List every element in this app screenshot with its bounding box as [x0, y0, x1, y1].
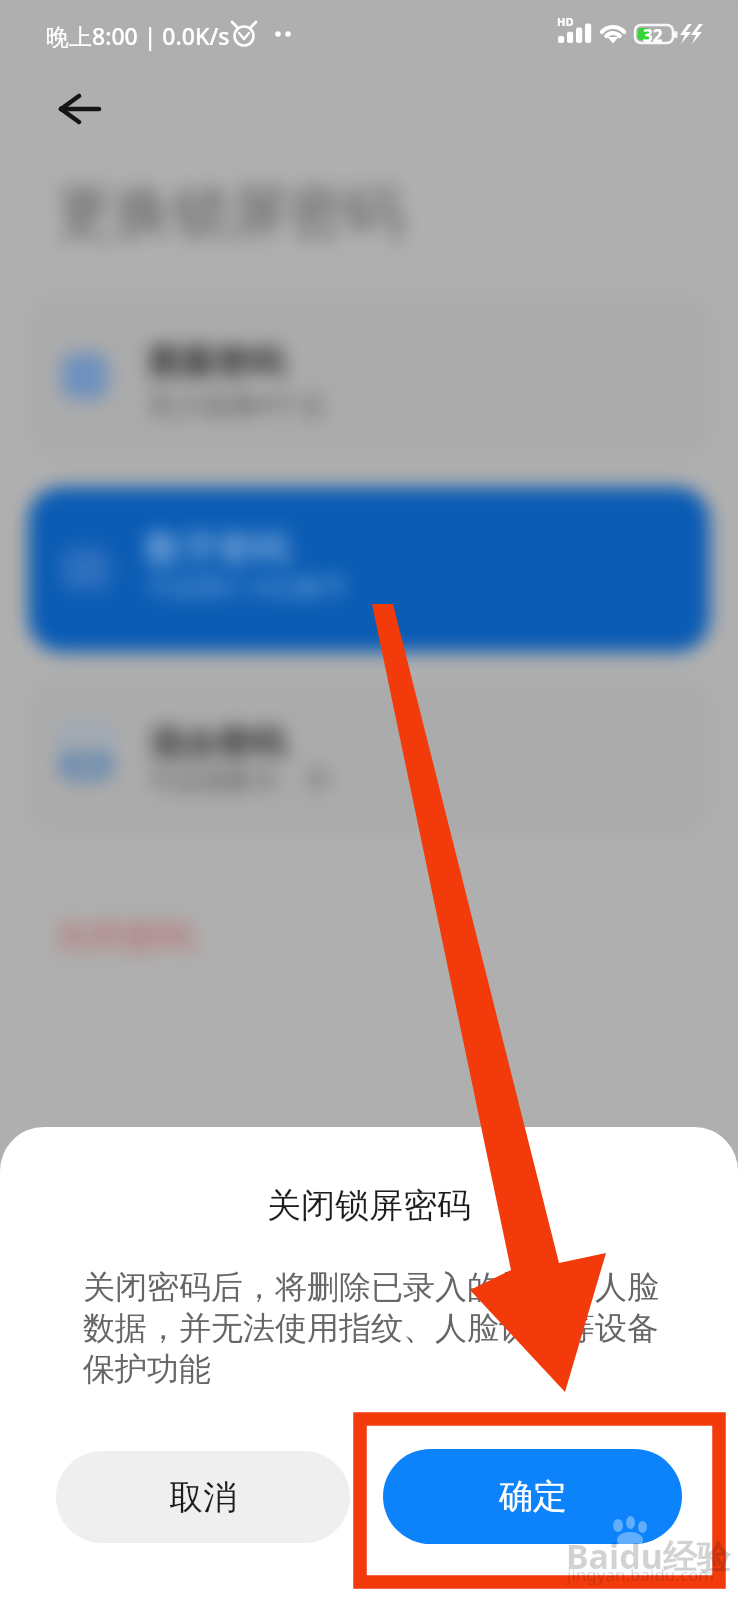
button[interactable]: 取消 — [56, 1451, 350, 1543]
staticText: 可设置4-16位数字 — [147, 569, 348, 603]
staticText: 图案密码 — [148, 341, 284, 384]
staticText: 晚上8:00 | 0.0K/s — [46, 20, 230, 51]
staticText: 32 — [643, 24, 663, 47]
staticText: 关闭锁屏密码 — [0, 1184, 738, 1227]
staticText: 混合密码 — [149, 722, 285, 765]
staticText: 取消 — [169, 1476, 237, 1519]
button[interactable]: Back — [40, 82, 98, 140]
staticText: 数字密码 — [146, 526, 290, 571]
staticText: 关闭密码后，将删除已录入的指纹、人脸数据，并无法使用指纹、人脸识别等设备保护功能 — [83, 1267, 661, 1389]
staticText: 至少连接4个点 — [148, 385, 326, 422]
staticText: 关闭密码 — [54, 915, 194, 959]
staticText: 确定 — [499, 1475, 567, 1518]
staticText: HD — [557, 14, 574, 29]
button[interactable]: 确定 — [383, 1449, 682, 1544]
staticText: 更换锁屏密码 — [56, 176, 404, 249]
staticText: 可设置数字、字 — [149, 765, 331, 798]
staticText: Baidu经验 — [566, 1533, 731, 1579]
staticText: jingyan.baidu.com — [567, 1563, 715, 1586]
